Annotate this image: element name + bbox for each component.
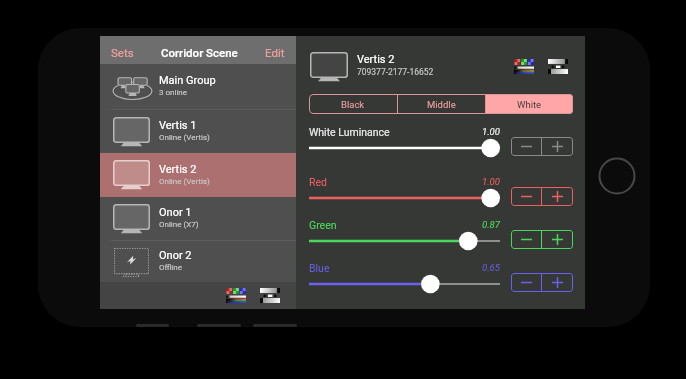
staticText: Green (309, 219, 337, 231)
staticText: Vertis 1 (159, 119, 197, 132)
staticText: 3 online (159, 88, 188, 97)
staticText: Online (Vertis) (159, 177, 210, 186)
button[interactable]: Increase White Luminance (542, 137, 573, 156)
button[interactable]: Onor 1 (100, 197, 296, 240)
button[interactable]: Home (597, 156, 637, 196)
button[interactable]: Decrease Green (511, 230, 541, 249)
button[interactable]: Increase Red (542, 187, 573, 206)
staticText: Blue (309, 262, 330, 274)
staticText: White Luminance (309, 126, 390, 138)
button[interactable]: Decrease Blue (511, 273, 541, 292)
staticText: Offline (159, 263, 182, 272)
staticText: 709377-2177-16652 (357, 67, 434, 77)
button[interactable]: White (486, 94, 573, 114)
staticText: 0.65 (482, 262, 500, 273)
staticText: Red (309, 176, 327, 188)
button[interactable]: Onor 2 (100, 241, 296, 282)
button[interactable]: Vertis 1 (100, 110, 296, 153)
staticText: Onor 2 (159, 249, 192, 262)
button[interactable]: Sets (100, 36, 143, 64)
staticText: 1.00 (482, 126, 500, 137)
button[interactable]: Main Group (100, 64, 296, 109)
staticText: White (517, 99, 542, 110)
staticText: Middle (427, 99, 456, 110)
staticText: Vertis 2 (357, 53, 395, 66)
button[interactable]: Increase Blue (542, 273, 573, 292)
staticText: Black (341, 99, 365, 110)
staticText: Edit (265, 46, 285, 59)
button[interactable]: Vertis 2 (100, 153, 296, 197)
button[interactable]: Decrease White Luminance (511, 137, 541, 156)
button[interactable]: Grayscale calibration (257, 284, 283, 307)
button[interactable]: Edit (256, 36, 296, 64)
button[interactable]: RGB calibration (223, 284, 249, 307)
staticText: Online (X7) (159, 220, 199, 229)
button[interactable]: RGB calibration (509, 54, 539, 79)
staticText: Main Group (159, 74, 216, 87)
button[interactable]: Decrease Red (511, 187, 541, 206)
button[interactable]: Middle (398, 94, 485, 114)
button[interactable]: Increase Green (542, 230, 573, 249)
button[interactable]: Black (309, 94, 397, 114)
staticText: Online (Vertis) (159, 133, 210, 142)
button[interactable]: Grayscale calibration (543, 54, 573, 79)
staticText: 0.87 (482, 219, 500, 230)
staticText: Sets (111, 46, 134, 59)
staticText: Onor 1 (159, 206, 192, 219)
staticText: Corridor Scene (161, 46, 238, 59)
staticText: 1.00 (482, 176, 500, 187)
staticText: Vertis 2 (159, 163, 197, 176)
